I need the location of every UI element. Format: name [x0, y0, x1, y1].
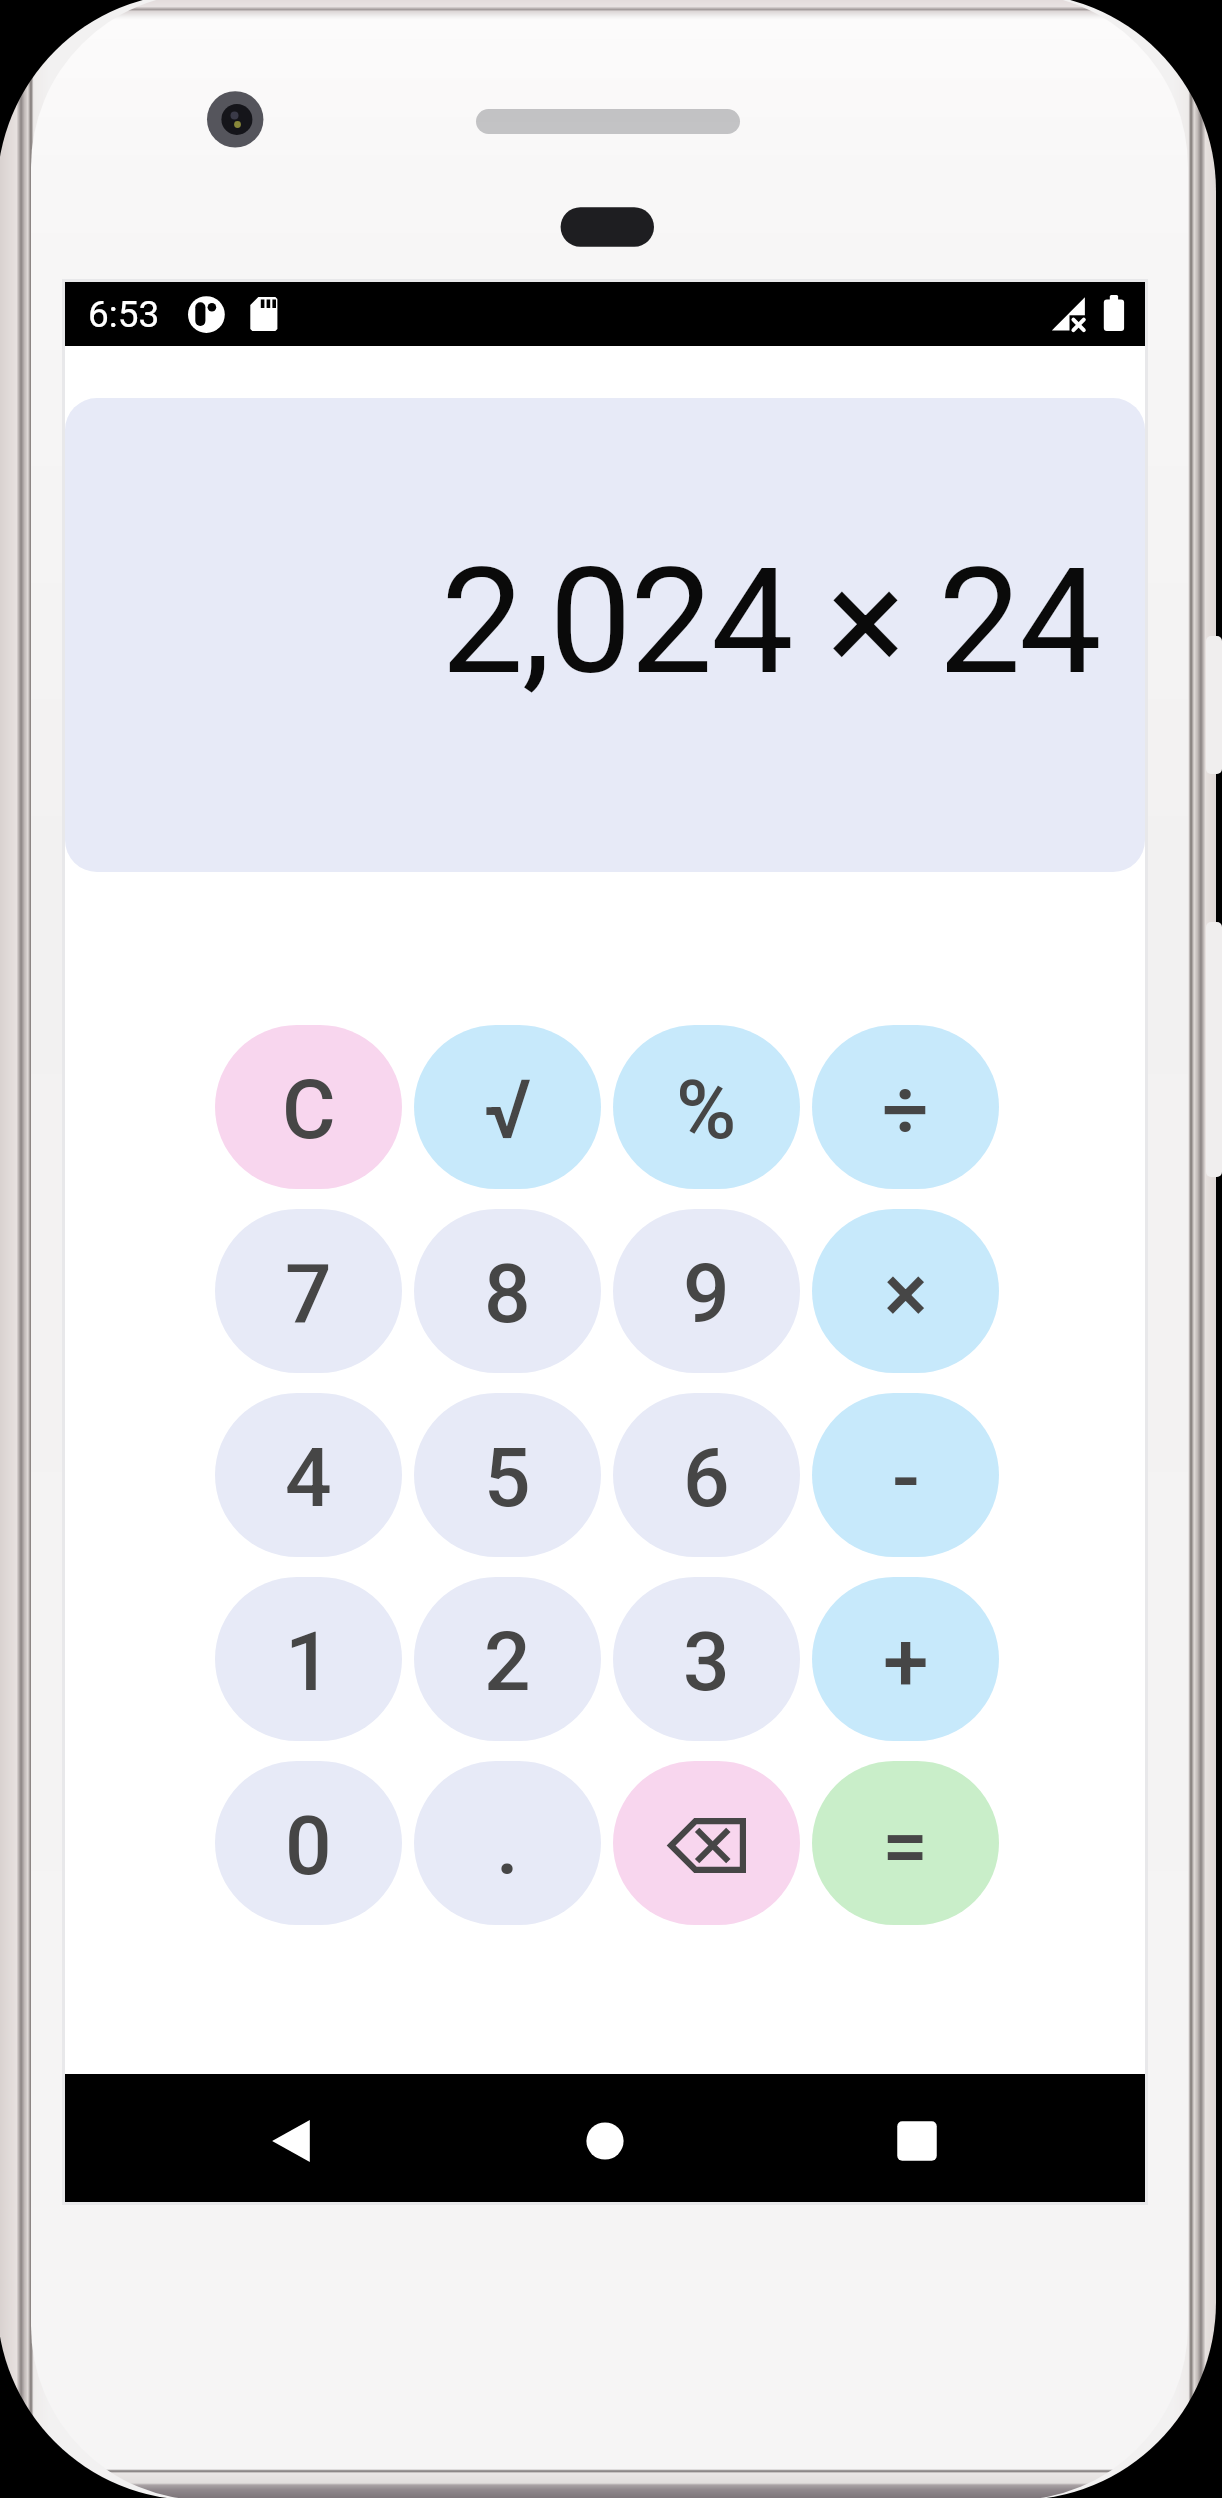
button[interactable]: 5: [414, 1393, 601, 1557]
staticText: 4: [285, 1430, 332, 1526]
button[interactable]: 1: [215, 1577, 402, 1741]
staticText: +: [883, 1614, 929, 1710]
button[interactable]: +: [812, 1577, 999, 1741]
staticText: 3: [683, 1614, 730, 1710]
button[interactable]: 7: [215, 1209, 402, 1373]
button[interactable]: Back: [227, 2074, 355, 2202]
staticText: 2: [484, 1614, 531, 1710]
button[interactable]: 0: [215, 1761, 402, 1925]
staticText: -: [892, 1430, 920, 1526]
staticText: 6: [683, 1430, 730, 1526]
staticText: 6:53: [88, 293, 160, 336]
staticText: ÷: [882, 1062, 929, 1158]
button[interactable]: ×: [812, 1209, 999, 1373]
staticText: 0: [285, 1798, 332, 1894]
button[interactable]: Home: [541, 2074, 669, 2202]
button[interactable]: C: [215, 1025, 402, 1189]
button[interactable]: 6: [613, 1393, 800, 1557]
staticText: 9: [683, 1246, 730, 1342]
staticText: C: [282, 1062, 336, 1158]
button[interactable]: 9: [613, 1209, 800, 1373]
button[interactable]: %: [613, 1025, 800, 1189]
staticText: 5: [484, 1430, 531, 1526]
staticText: √: [484, 1062, 532, 1158]
staticText: 2,024 × 24: [441, 536, 1100, 708]
button[interactable]: 3: [613, 1577, 800, 1741]
button[interactable]: 2: [414, 1577, 601, 1741]
button[interactable]: -: [812, 1393, 999, 1557]
button[interactable]: Backspace: [613, 1761, 800, 1925]
staticText: ×: [884, 1246, 928, 1342]
button[interactable]: √: [414, 1025, 601, 1189]
button[interactable]: Recent apps: [853, 2074, 981, 2202]
button[interactable]: =: [812, 1761, 999, 1925]
button[interactable]: .: [414, 1761, 601, 1925]
staticText: 8: [484, 1246, 531, 1342]
staticText: .: [496, 1798, 519, 1894]
button[interactable]: 8: [414, 1209, 601, 1373]
staticText: 1: [285, 1614, 332, 1710]
staticText: %: [676, 1062, 737, 1158]
button[interactable]: 4: [215, 1393, 402, 1557]
button[interactable]: ÷: [812, 1025, 999, 1189]
staticText: 7: [285, 1246, 332, 1342]
staticText: =: [882, 1798, 929, 1894]
